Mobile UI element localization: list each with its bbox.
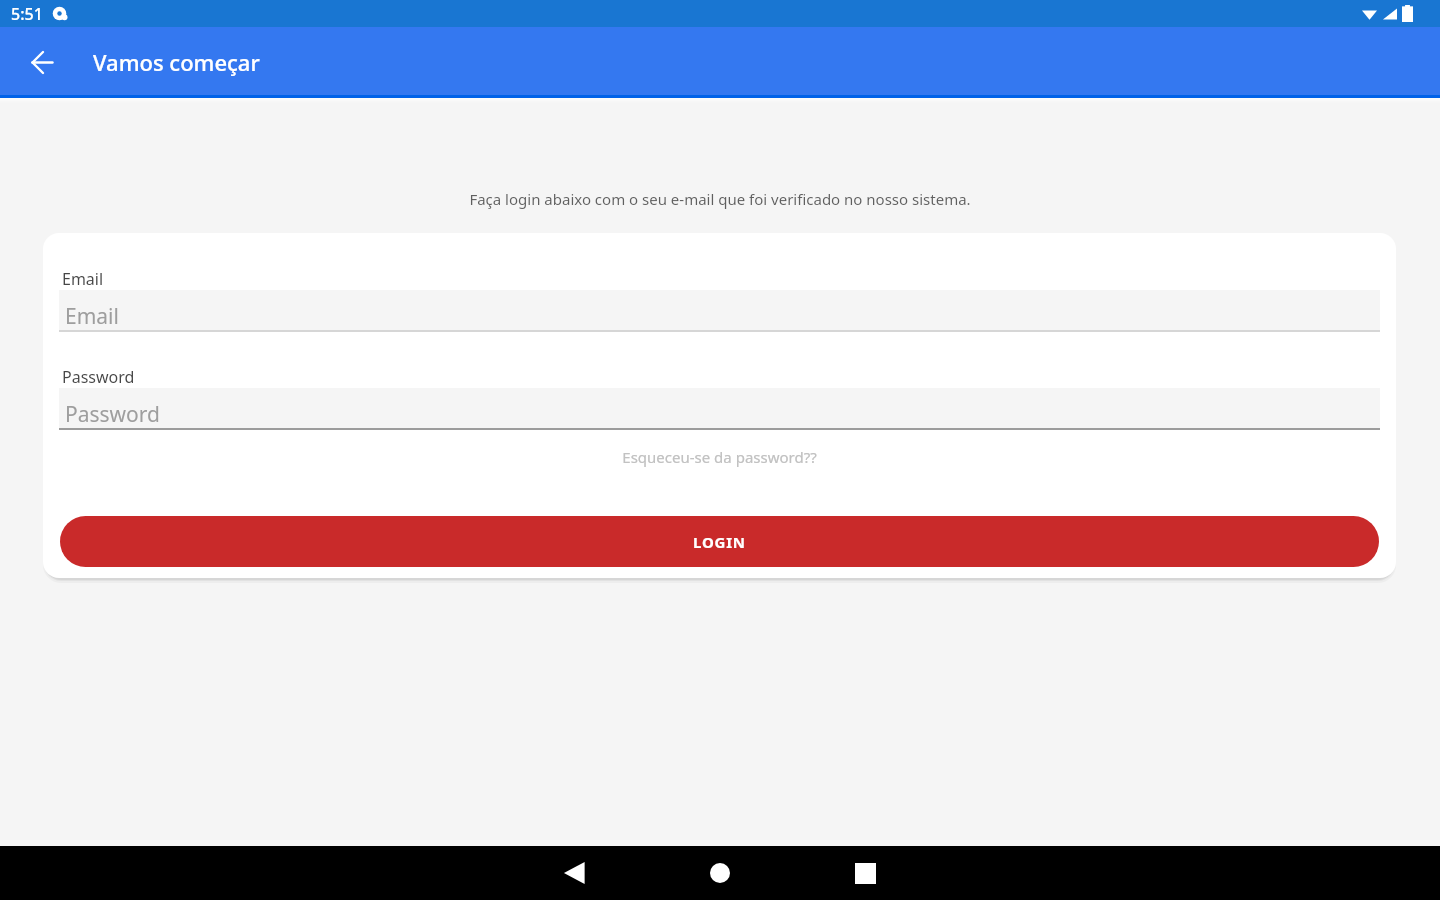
staticText: Faça login abaixo com o seu e-mail que f… [0,189,1440,209]
staticText: 5:51 [11,3,43,25]
staticText: Password [65,400,160,429]
staticText: Password [62,366,135,388]
staticText: Vamos começar [93,47,260,77]
button[interactable]: Home [696,849,744,897]
button[interactable]: Back [18,38,66,86]
button[interactable]: LOGIN [60,516,1379,567]
button[interactable]: Password [59,388,1380,430]
staticText: Esqueceu-se da password?? [43,447,1396,467]
button[interactable]: Recents [841,849,889,897]
staticText: Email [65,302,119,331]
staticText: Email [62,268,104,290]
button[interactable]: Esqueceu-se da password?? [43,442,1396,472]
button[interactable]: Back [551,849,599,897]
staticText: LOGIN [693,532,746,552]
button[interactable]: Email [59,290,1380,332]
